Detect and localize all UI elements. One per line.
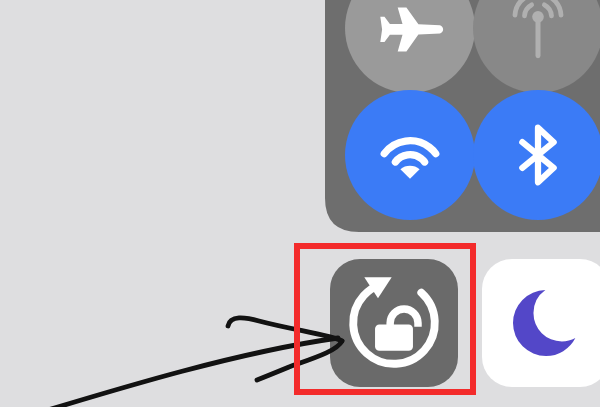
button[interactable]: Airplane mode <box>345 0 475 93</box>
button[interactable]: Do Not Disturb <box>482 259 600 387</box>
button[interactable]: Portrait Orientation Lock <box>330 259 458 387</box>
button[interactable]: Bluetooth <box>473 90 600 220</box>
button[interactable]: Wi-Fi <box>345 90 475 220</box>
button[interactable]: Cellular data <box>473 0 600 93</box>
